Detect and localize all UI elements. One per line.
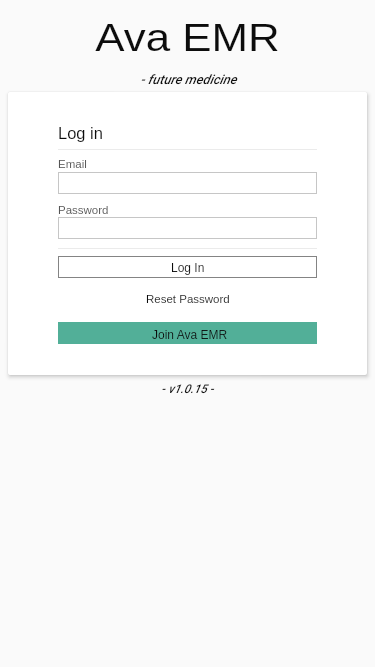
staticText: Log in	[58, 124, 103, 142]
staticText: Log In	[171, 261, 205, 274]
button[interactable]: Join Ava EMR	[58, 322, 317, 344]
button[interactable]: Log In	[58, 256, 317, 278]
staticText: Password	[58, 204, 109, 217]
staticText: Reset Password	[146, 293, 230, 306]
staticText: Ava EMR	[0, 16, 375, 60]
button[interactable]: Reset Password	[58, 293, 317, 306]
button[interactable]: Password input field	[58, 217, 317, 239]
staticText: - future medicine	[1, 72, 375, 87]
staticText: Email	[58, 158, 87, 171]
staticText: Join Ava EMR	[152, 328, 228, 341]
staticText: - v1.0.15 -	[0, 382, 375, 396]
button[interactable]: Email input field	[58, 172, 317, 194]
